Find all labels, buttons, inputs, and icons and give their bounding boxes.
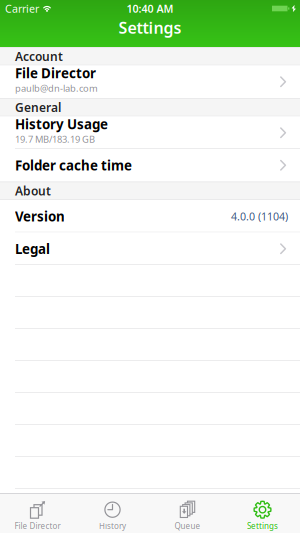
staticText: Version	[15, 207, 65, 225]
staticText: Carrier	[5, 1, 39, 16]
button[interactable]: File Director	[0, 501, 75, 531]
staticText: 19.7 MB/183.19 GB	[15, 133, 95, 145]
staticText: 10:40 AM	[126, 1, 173, 16]
staticText: 4.0.0 (1104)	[231, 209, 288, 223]
staticText: File Director	[14, 521, 60, 531]
staticText: Queue	[174, 521, 200, 531]
staticText: paulb@dn-lab.com	[15, 82, 98, 94]
button[interactable]: File Director	[0, 65, 300, 98]
staticText: Folder cache time	[15, 156, 132, 174]
staticText: History Usage	[15, 115, 108, 133]
staticText: Legal	[15, 240, 50, 258]
staticText: File Director	[15, 64, 96, 82]
button[interactable]: History Usage	[0, 116, 300, 149]
staticText: About	[15, 183, 51, 199]
button[interactable]: Settings	[225, 501, 300, 531]
staticText: Settings	[247, 521, 278, 531]
staticText: Settings	[118, 17, 181, 38]
button[interactable]: Folder cache time	[0, 149, 300, 181]
button[interactable]: History	[75, 501, 150, 531]
button[interactable]: Queue	[150, 501, 225, 531]
button[interactable]: Version	[0, 200, 300, 232]
staticText: History	[99, 521, 126, 531]
button[interactable]: Legal	[0, 232, 300, 265]
staticText: Account	[15, 48, 63, 64]
staticText: General	[15, 99, 61, 115]
